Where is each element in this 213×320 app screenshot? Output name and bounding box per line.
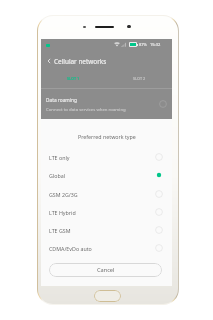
button[interactable]: SLOT 2	[106, 71, 172, 85]
staticText: Connect to data services when roaming	[46, 106, 126, 112]
staticText: Cancel	[97, 266, 115, 274]
button[interactable]: CDMA/EvDo auto	[41, 239, 172, 257]
button[interactable]: Data roaming	[41, 91, 172, 117]
button[interactable]: LTE GSM	[41, 221, 172, 239]
button[interactable]: SLOT 1	[41, 71, 106, 85]
staticText: LTE only	[49, 154, 70, 161]
button[interactable]: GSM 2G/3G	[41, 185, 172, 203]
button[interactable]: LTE only	[41, 148, 172, 166]
staticText: Cellular networks	[54, 57, 107, 66]
staticText: 15:32	[150, 42, 161, 47]
staticText: Preferred network type	[78, 133, 136, 140]
staticText: SLOT 2	[133, 76, 146, 81]
button[interactable]: Cancel	[49, 263, 162, 277]
staticText: SLOT 1	[67, 76, 80, 81]
staticText: CDMA/EvDo auto	[49, 245, 92, 252]
staticText: LTE Hybrid	[49, 209, 76, 216]
other: Data roaming toggle	[159, 100, 167, 108]
button[interactable]: LTE Hybrid	[41, 203, 172, 221]
other: Back	[46, 58, 52, 64]
staticText: Global	[49, 172, 66, 179]
staticText: 87%	[139, 42, 147, 47]
staticText: LTE GSM	[49, 227, 71, 234]
staticText: Data roaming	[46, 97, 77, 104]
button[interactable]: Back	[41, 52, 172, 70]
button[interactable]: Global	[41, 166, 172, 184]
staticText: GSM 2G/3G	[49, 191, 78, 198]
